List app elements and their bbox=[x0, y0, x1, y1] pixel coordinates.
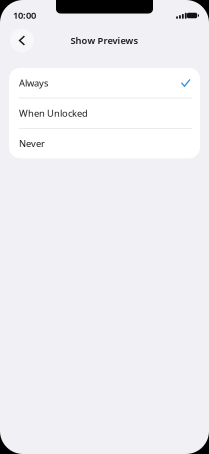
staticText: Always bbox=[19, 77, 48, 89]
staticText: Show Previews bbox=[70, 34, 138, 47]
staticText: When Unlocked bbox=[19, 107, 88, 119]
button[interactable]: Always bbox=[9, 68, 200, 98]
button[interactable]: When Unlocked bbox=[9, 98, 200, 128]
staticText: Never bbox=[19, 137, 45, 150]
button[interactable]: Back bbox=[10, 28, 34, 52]
button[interactable]: Never bbox=[9, 129, 200, 158]
staticText: 10:00 bbox=[13, 9, 36, 21]
